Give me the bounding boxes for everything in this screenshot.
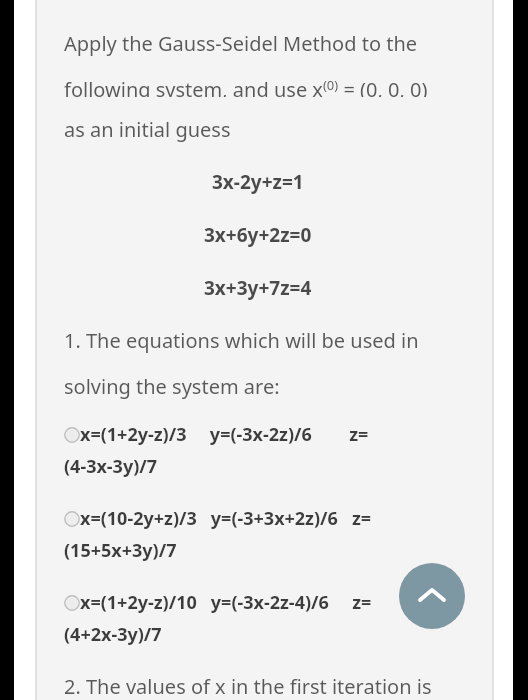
staticText: x=(1+2y-z)/10 y=(-3x-2z-4)/6 z= — [80, 590, 372, 615]
button[interactable]: x=(10-2y+z)/3 y=(-3+3x+2z)/6 z= — [64, 506, 486, 563]
staticText: 3x+6y+2z=0 — [204, 222, 312, 248]
staticText: x=(10-2y+z)/3 y=(-3+3x+2z)/6 z= — [80, 506, 372, 531]
staticText: (4+2x-3y)/7 — [64, 622, 162, 647]
staticText: 2. The values of x in the first iteratio… — [64, 673, 432, 700]
staticText: (15+5x+3y)/7 — [64, 538, 177, 563]
staticText: solving the system are: — [64, 373, 280, 400]
staticText: 1. The equations which will be used in — [64, 327, 419, 354]
staticText: Apply the Gauss-Seidel Method to the — [64, 30, 418, 57]
staticText: x=(1+2y-z)/3 y=(-3x-2z)/6 z= — [80, 422, 369, 447]
staticText: as an initial guess — [64, 116, 231, 143]
button[interactable]: Scroll to top — [399, 563, 465, 629]
button[interactable]: x=(1+2y-z)/10 y=(-3x-2z-4)/6 z= — [64, 590, 486, 647]
staticText: (4-3x-3y)/7 — [64, 454, 158, 479]
button[interactable]: x=(1+2y-z)/3 y=(-3x-2z)/6 z= — [64, 422, 486, 479]
staticText: 3x-2y+z=1 — [212, 169, 304, 195]
staticText: 3x+3y+7z=4 — [204, 275, 312, 301]
staticText: following system, and use x(0) = (0, 0, … — [64, 76, 428, 97]
